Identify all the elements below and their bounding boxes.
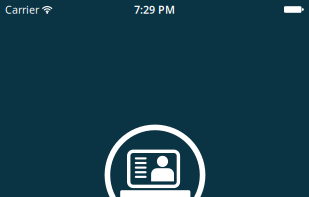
staticText: Carrier: [5, 2, 39, 17]
staticText: 7:29 PM: [134, 2, 175, 17]
